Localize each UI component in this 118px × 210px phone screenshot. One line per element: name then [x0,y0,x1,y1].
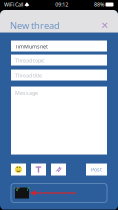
button[interactable]: Post [86,163,107,175]
staticText: 88% [94,1,104,8]
staticText: 09:12 [55,1,68,8]
button[interactable]: Thread topic [11,54,107,65]
button[interactable]: Attach [51,163,66,175]
staticText: Thread title [15,72,42,79]
button[interactable]: Thread title [11,69,107,80]
staticText: Message [15,89,38,97]
staticText: Post [91,166,102,173]
staticText: Thread topic [15,57,45,64]
staticText: New thread [10,19,60,32]
staticText: TimMumsnet [15,43,48,50]
button[interactable]: Emoji [11,163,26,175]
button[interactable]: Message [11,86,107,154]
button[interactable]: Format text [31,163,46,175]
button[interactable]: TimMumsnet [11,40,107,51]
button[interactable]: Close [100,20,110,30]
staticText: WiFi Call [4,1,23,8]
